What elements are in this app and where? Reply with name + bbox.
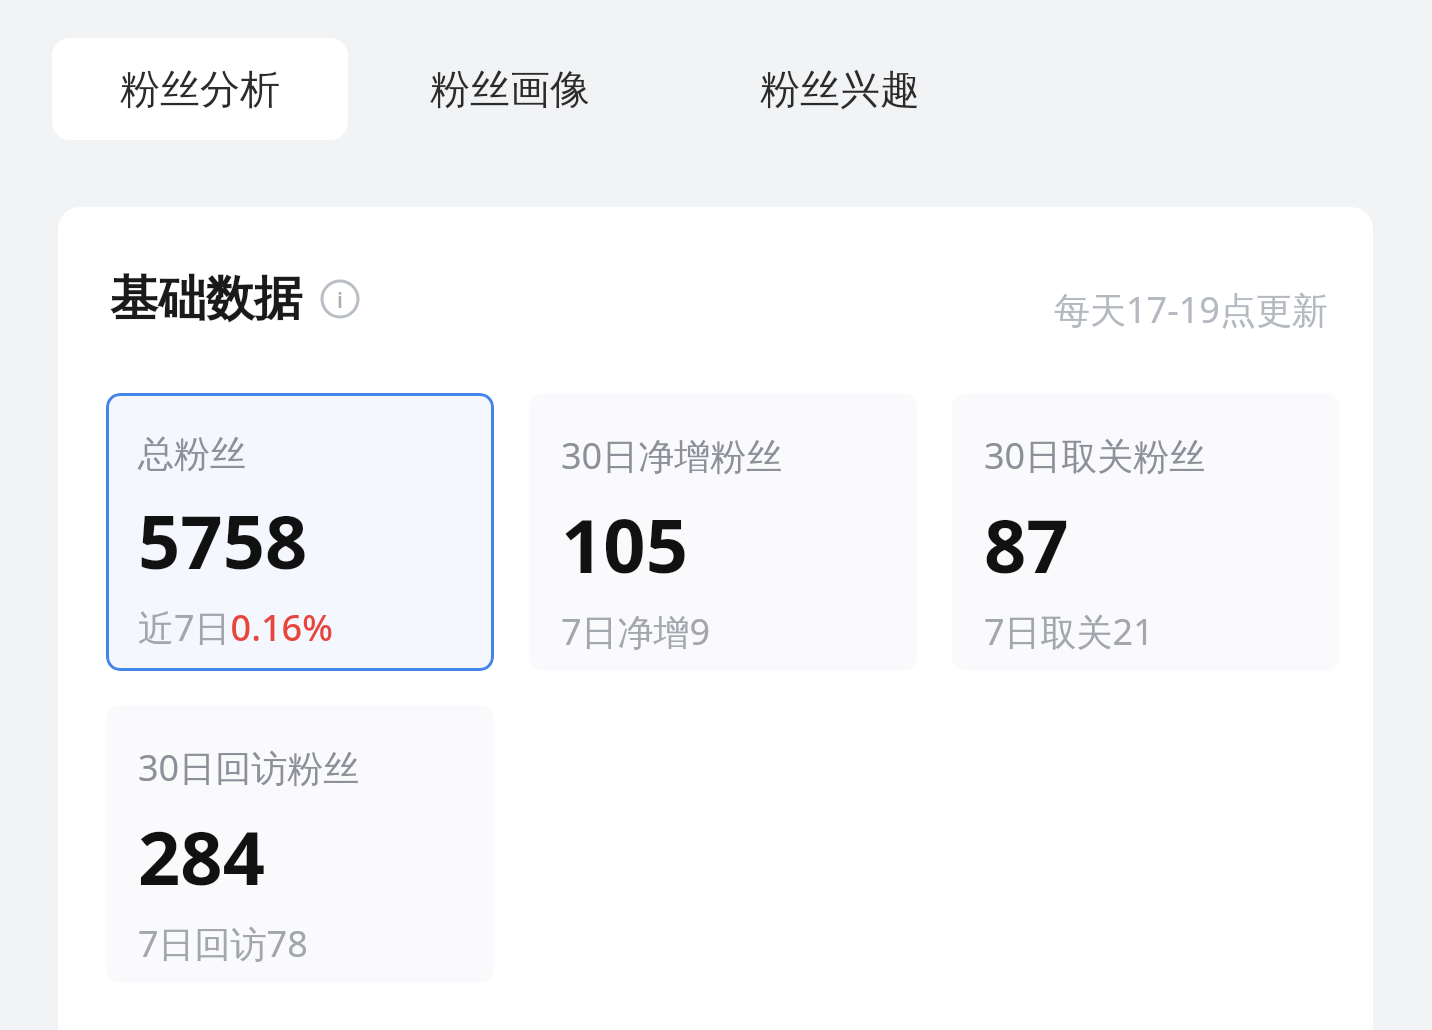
button[interactable]: 粉丝画像 — [380, 38, 640, 140]
staticText: 105 — [561, 494, 688, 595]
staticText: 87 — [984, 494, 1069, 595]
staticText: 每天17-19点更新 — [1054, 285, 1328, 334]
staticText: 30日净增粉丝 — [561, 431, 783, 480]
button[interactable]: 粉丝兴趣 — [710, 38, 970, 140]
staticText: 基础数据 — [110, 269, 302, 329]
staticText: 粉丝画像 — [430, 64, 590, 114]
staticText: i — [337, 284, 343, 314]
staticText: 总粉丝 — [138, 431, 246, 476]
staticText: 5758 — [138, 490, 308, 591]
button[interactable]: 总粉丝 — [106, 393, 494, 671]
staticText: 30日取关粉丝 — [984, 431, 1206, 480]
staticText: 284 — [138, 806, 265, 907]
staticText: 7日取关21 — [984, 607, 1154, 656]
staticText: 近7日0.16% — [138, 603, 333, 652]
staticText: 粉丝兴趣 — [760, 64, 920, 114]
button[interactable]: 30日净增粉丝 — [529, 393, 917, 671]
button[interactable]: 30日回访粉丝 — [106, 705, 494, 983]
button[interactable]: 信息说明 — [320, 279, 360, 319]
button[interactable]: 粉丝分析 — [52, 38, 348, 140]
staticText: 30日回访粉丝 — [138, 743, 360, 792]
staticText: 7日回访78 — [138, 919, 308, 968]
staticText: 粉丝分析 — [120, 64, 280, 114]
button[interactable]: 30日取关粉丝 — [952, 393, 1340, 671]
staticText: 7日净增9 — [561, 607, 711, 656]
